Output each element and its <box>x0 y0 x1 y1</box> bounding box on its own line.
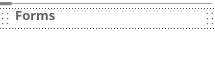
button[interactable]: Forms <box>15 6 56 24</box>
